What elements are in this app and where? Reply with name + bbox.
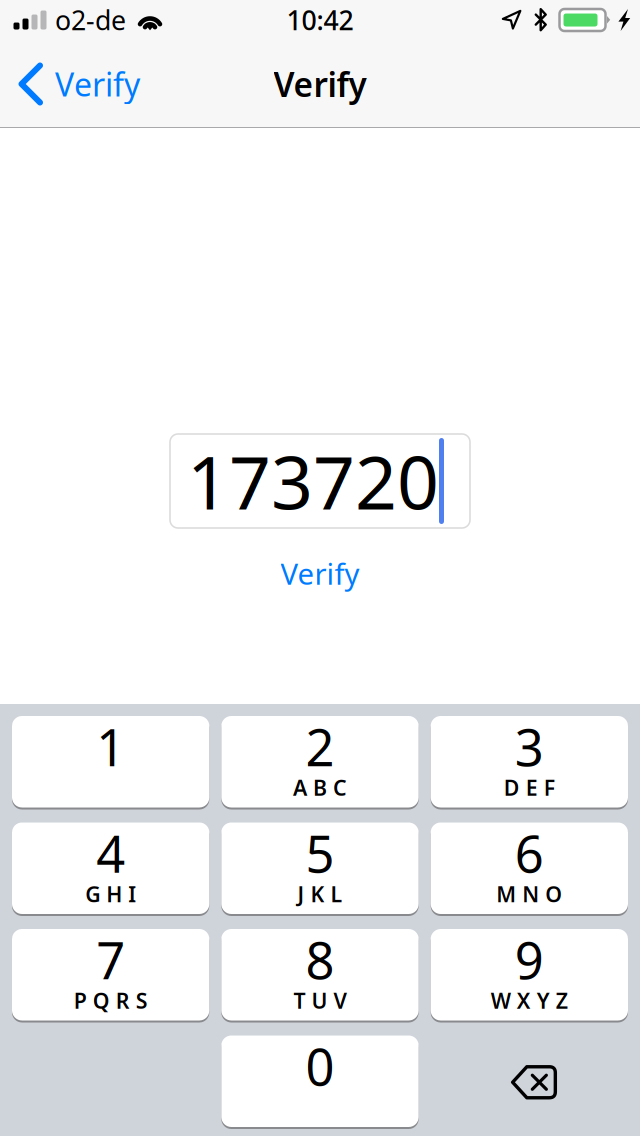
staticText: Verify bbox=[55, 63, 140, 105]
staticText: 2 bbox=[305, 713, 334, 780]
staticText: 3 bbox=[515, 713, 544, 780]
staticText: 7 bbox=[96, 926, 125, 993]
staticText: 4 bbox=[96, 819, 125, 887]
staticText: J K L bbox=[297, 880, 342, 908]
staticText: 6 bbox=[515, 819, 544, 887]
staticText: A B C bbox=[293, 773, 347, 802]
staticText: 0 bbox=[305, 1032, 334, 1100]
button[interactable]: 3 bbox=[431, 716, 628, 809]
staticText: Verify bbox=[280, 554, 359, 593]
staticText: 173720 bbox=[187, 432, 439, 530]
button[interactable]: Verify bbox=[246, 542, 393, 605]
staticText: P Q R S bbox=[74, 986, 148, 1015]
button[interactable]: Delete bbox=[431, 1035, 628, 1129]
staticText: Verify bbox=[273, 62, 366, 106]
button[interactable]: 4 bbox=[12, 822, 209, 916]
button[interactable]: 9 bbox=[431, 929, 628, 1022]
staticText: 9 bbox=[515, 926, 544, 993]
button[interactable]: 0 bbox=[221, 1035, 419, 1129]
button[interactable]: 8 bbox=[221, 929, 419, 1022]
button[interactable]: 5 bbox=[221, 822, 419, 916]
button[interactable]: 6 bbox=[431, 822, 628, 916]
staticText: W X Y Z bbox=[491, 986, 568, 1015]
staticText: T U V bbox=[293, 986, 346, 1015]
staticText: D E F bbox=[504, 773, 555, 802]
staticText: 5 bbox=[305, 819, 334, 887]
staticText: 10:42 bbox=[286, 2, 353, 38]
staticText: G H I bbox=[85, 880, 136, 908]
button[interactable]: 7 bbox=[12, 929, 209, 1022]
button[interactable]: 2 bbox=[221, 716, 419, 809]
staticText: 1 bbox=[96, 713, 125, 780]
button[interactable]: Verify bbox=[0, 40, 158, 128]
staticText: 8 bbox=[305, 926, 334, 993]
staticText: o2-de bbox=[55, 2, 126, 38]
staticText: M N O bbox=[496, 880, 562, 908]
button[interactable]: 1 bbox=[12, 716, 209, 809]
